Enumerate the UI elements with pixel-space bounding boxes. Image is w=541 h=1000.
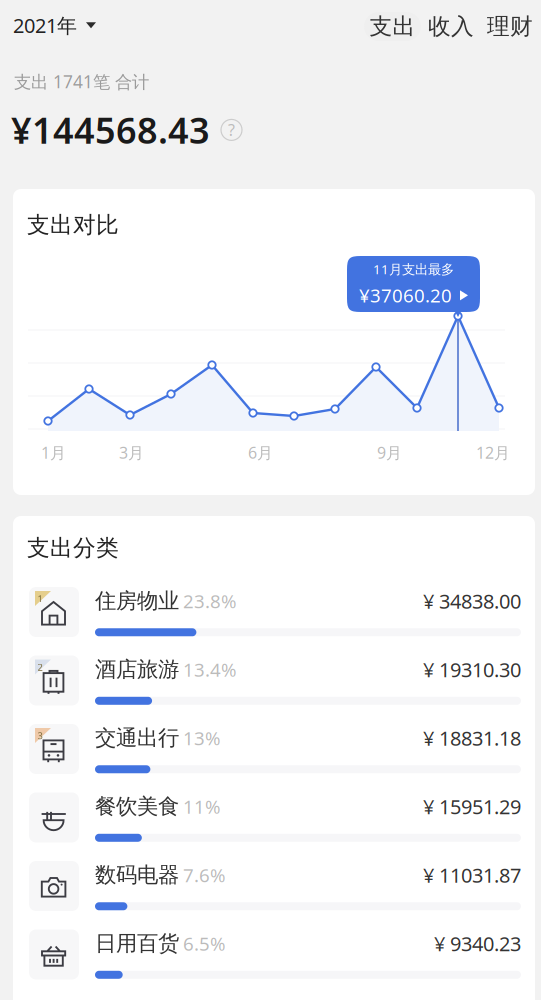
staticText: 住房物业 [95, 588, 179, 614]
button[interactable]: Info [221, 119, 242, 140]
staticText: 23.8% [183, 589, 237, 613]
staticText: ¥ 18831.18 [423, 725, 521, 751]
staticText: 数码电器 [95, 862, 179, 888]
staticText: 3 [37, 729, 42, 742]
staticText: 9月 [377, 442, 402, 463]
staticText: ¥ 11031.87 [423, 862, 521, 888]
staticText: ¥ 9340.23 [434, 930, 521, 957]
staticText: 交通出行 [95, 725, 179, 751]
button[interactable]: 2 [29, 655, 522, 705]
staticText: ¥ 19310.30 [423, 656, 521, 683]
staticText: 7.6% [183, 863, 226, 887]
staticText: 6.5% [183, 931, 226, 956]
button[interactable]: 收入 [429, 12, 473, 41]
staticText: 日用百货 [95, 930, 179, 957]
button[interactable]: 理财 [488, 12, 532, 41]
button[interactable]: 1 [29, 587, 522, 637]
button[interactable]: 日用百货 [29, 929, 522, 979]
staticText: 餐饮美食 [95, 793, 179, 820]
staticText: 2021年 [13, 12, 77, 39]
staticText: ¥ 15951.29 [423, 793, 521, 820]
button[interactable]: 支出 [364, 12, 421, 41]
staticText: 理财 [487, 13, 533, 40]
staticText: 13% [183, 726, 221, 750]
staticText: 3月 [119, 442, 144, 463]
staticText: 支出 [369, 13, 415, 40]
staticText: 1月 [41, 442, 66, 463]
button[interactable]: 3 [29, 724, 522, 774]
staticText: 6月 [248, 442, 273, 463]
staticText: 1 [37, 592, 42, 605]
staticText: 酒店旅游 [95, 656, 179, 683]
staticText: 13.4% [183, 657, 237, 682]
staticText: 11月支出最多 [373, 260, 454, 278]
button[interactable]: 数码电器 [29, 861, 522, 911]
staticText: 12月 [476, 442, 510, 463]
staticText: 收入 [428, 13, 474, 40]
staticText: 支出对比 [27, 211, 119, 239]
staticText: ¥144568.43 [11, 106, 210, 154]
button[interactable]: 餐饮美食 [29, 792, 522, 842]
staticText: ¥37060.20 [359, 283, 452, 308]
staticText: 支出分类 [27, 534, 119, 562]
staticText: 2 [37, 661, 42, 673]
staticText: 支出 1741笔 合计 [14, 70, 149, 93]
staticText: 11% [183, 794, 221, 819]
staticText: ¥ 34838.00 [423, 588, 521, 614]
button[interactable]: 2021年 [13, 7, 96, 44]
staticText: ? [228, 119, 235, 140]
